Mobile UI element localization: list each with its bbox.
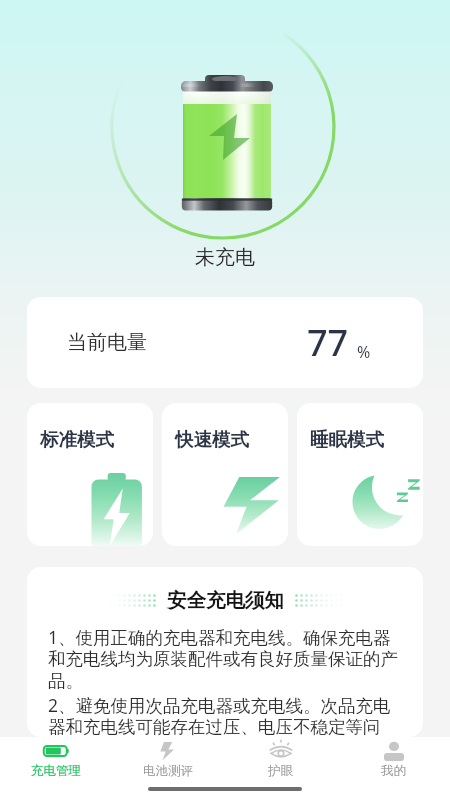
staticText: 2、避免使用次品充电器或充电线。次品充电器和充电线可能存在过压、电压不稳定等问题… [48,693,404,737]
button[interactable]: Charging management [0,737,112,800]
staticText: 快速模式 [175,428,249,451]
staticText: 电池测评 [143,763,193,779]
button[interactable]: 当前电量 [27,297,423,388]
staticText: 睡眠模式 [310,428,384,451]
button[interactable]: Eye care [224,737,337,800]
staticText: 未充电 [195,245,255,270]
button[interactable]: 睡眠模式 [297,403,423,546]
staticText: 标准模式 [40,428,114,451]
staticText: 安全充电须知 [167,588,284,613]
staticText: 我的 [381,763,406,779]
button[interactable]: 快速模式 [162,403,288,546]
staticText: 护眼 [268,763,293,779]
button[interactable]: 标准模式 [27,403,153,546]
staticText: 77 [307,318,349,367]
staticText: % [357,341,371,363]
staticText: 1、使用正确的充电器和充电线。确保充电器和充电线均为原装配件或有良好质量保证的产… [48,625,404,693]
staticText: 充电管理 [31,763,81,779]
button[interactable]: Mine [337,737,450,800]
button[interactable]: Battery test [112,737,224,800]
staticText: 当前电量 [67,330,147,355]
